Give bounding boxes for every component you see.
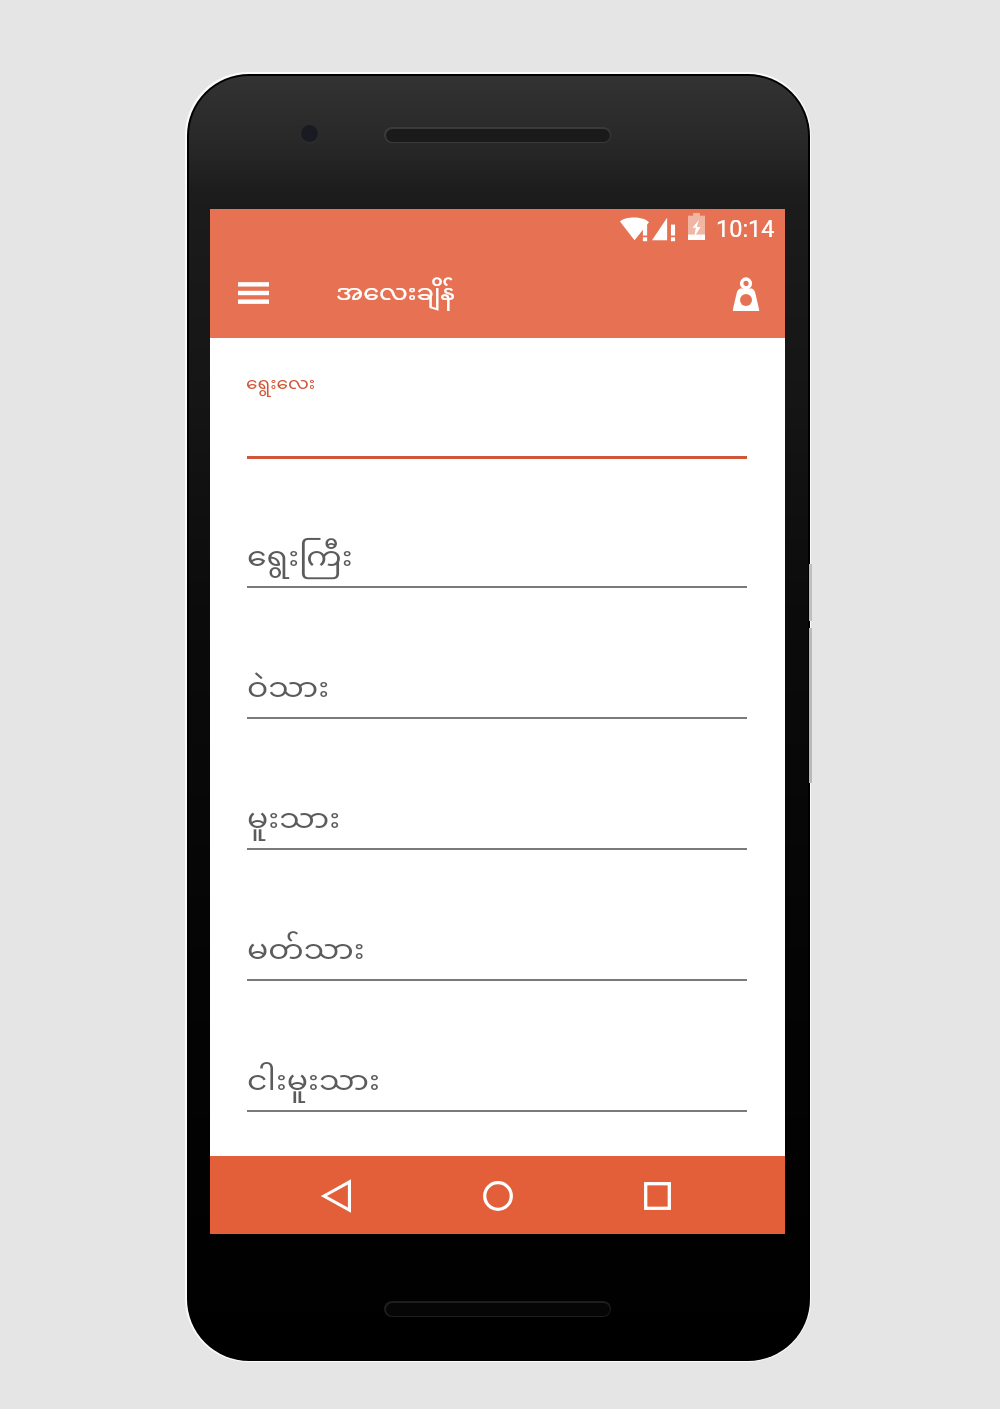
button[interactable]: Home [465, 1170, 531, 1222]
button[interactable]: မူးသား [210, 718, 785, 849]
staticText: မတ်သား [247, 930, 365, 973]
staticText: ရွေးကြီး [247, 537, 353, 580]
staticText: ဝဲသား [247, 668, 330, 711]
button[interactable]: ငါးမူးသား [210, 980, 785, 1111]
button[interactable]: Weight [717, 265, 775, 323]
staticText: မူးသား [247, 799, 341, 842]
staticText: 10:14 [716, 215, 775, 243]
button[interactable]: ဝဲသား [210, 587, 785, 718]
staticText: အလေးချိန် [336, 277, 455, 312]
button[interactable]: Recent apps [626, 1170, 689, 1222]
button[interactable]: မတ်သား [210, 849, 785, 980]
staticText: ငါးမူးသား [247, 1061, 380, 1104]
staticText: ရွေးလေး [246, 372, 316, 397]
button[interactable]: Back [304, 1170, 369, 1222]
button[interactable]: ရွေးကြီး [210, 456, 785, 587]
button[interactable]: Open navigation menu [210, 264, 296, 322]
